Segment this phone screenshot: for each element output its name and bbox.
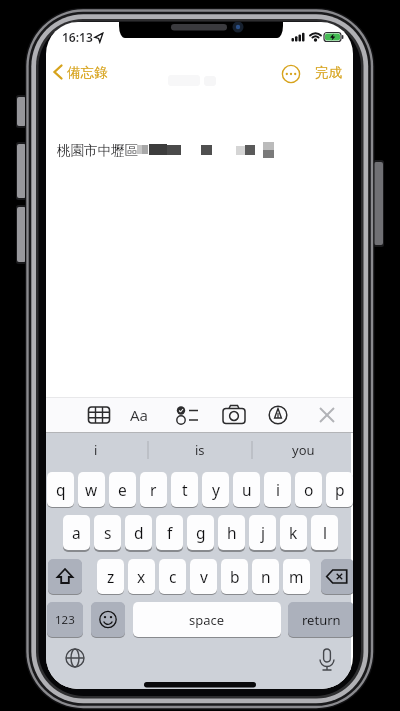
button[interactable]: [88, 405, 110, 425]
staticText: 備忘錄: [67, 64, 108, 81]
button[interactable]: i: [46, 433, 148, 467]
staticText: return: [302, 611, 341, 629]
staticText: i: [94, 441, 98, 459]
staticText: f: [167, 522, 173, 543]
staticText: v: [200, 566, 208, 587]
button[interactable]: r: [140, 472, 167, 507]
button[interactable]: l: [311, 515, 338, 550]
button[interactable]: s: [94, 515, 121, 550]
button[interactable]: [280, 63, 302, 85]
staticText: j: [261, 522, 265, 543]
button[interactable]: x: [128, 559, 155, 594]
button[interactable]: k: [280, 515, 307, 550]
button[interactable]: [48, 559, 82, 594]
button[interactable]: 完成: [312, 62, 346, 83]
button[interactable]: o: [295, 472, 322, 507]
button[interactable]: q: [47, 472, 74, 507]
staticText: e: [118, 479, 127, 500]
staticText: 完成: [315, 64, 342, 81]
button[interactable]: [268, 405, 288, 425]
button[interactable]: [91, 602, 125, 637]
staticText: u: [242, 479, 252, 500]
staticText: i: [276, 479, 280, 500]
button[interactable]: a: [63, 515, 90, 550]
button[interactable]: z: [97, 559, 124, 594]
button[interactable]: p: [326, 472, 353, 507]
staticText: l: [323, 522, 327, 543]
button[interactable]: Aa: [126, 403, 152, 427]
button[interactable]: [222, 404, 246, 426]
button[interactable]: e: [109, 472, 136, 507]
button[interactable]: [316, 404, 338, 426]
button[interactable]: v: [190, 559, 217, 594]
staticText: h: [227, 522, 237, 543]
button[interactable]: y: [202, 472, 229, 507]
staticText: 123: [55, 612, 75, 628]
button[interactable]: h: [218, 515, 245, 550]
button[interactable]: g: [187, 515, 214, 550]
staticText: s: [104, 522, 112, 543]
staticText: m: [289, 566, 304, 587]
staticText: c: [169, 566, 177, 587]
button[interactable]: f: [156, 515, 183, 550]
staticText: is: [195, 441, 205, 459]
button[interactable]: [314, 645, 340, 671]
button[interactable]: n: [252, 559, 279, 594]
button[interactable]: [175, 405, 199, 425]
staticText: g: [196, 522, 206, 543]
button[interactable]: you: [252, 433, 353, 467]
staticText: Aa: [130, 405, 149, 425]
staticText: n: [261, 566, 271, 587]
staticText: x: [137, 566, 146, 587]
button[interactable]: w: [78, 472, 105, 507]
staticText: k: [289, 522, 298, 543]
staticText: q: [56, 479, 66, 500]
staticText: y: [212, 479, 220, 500]
staticText: 桃園市中壢區: [57, 142, 138, 159]
staticText: you: [292, 441, 315, 459]
button[interactable]: t: [171, 472, 198, 507]
button[interactable]: c: [159, 559, 186, 594]
button[interactable]: is: [148, 433, 252, 467]
button[interactable]: u: [233, 472, 260, 507]
staticText: r: [150, 479, 157, 500]
staticText: p: [335, 479, 345, 500]
button[interactable]: [50, 62, 114, 83]
button[interactable]: [321, 559, 353, 594]
button[interactable]: d: [125, 515, 152, 550]
button[interactable]: [62, 645, 88, 671]
button[interactable]: j: [249, 515, 276, 550]
staticText: 16:13: [62, 29, 93, 45]
staticText: b: [230, 566, 240, 587]
button[interactable]: return: [288, 602, 353, 637]
staticText: z: [107, 566, 115, 587]
button[interactable]: i: [264, 472, 291, 507]
staticText: t: [182, 479, 188, 500]
staticText: w: [85, 479, 98, 500]
staticText: o: [304, 479, 314, 500]
button[interactable]: m: [283, 559, 310, 594]
staticText: d: [134, 522, 144, 543]
staticText: space: [189, 611, 225, 629]
staticText: a: [72, 522, 81, 543]
button[interactable]: b: [221, 559, 248, 594]
button[interactable]: 123: [47, 602, 83, 637]
button[interactable]: space: [133, 602, 281, 637]
